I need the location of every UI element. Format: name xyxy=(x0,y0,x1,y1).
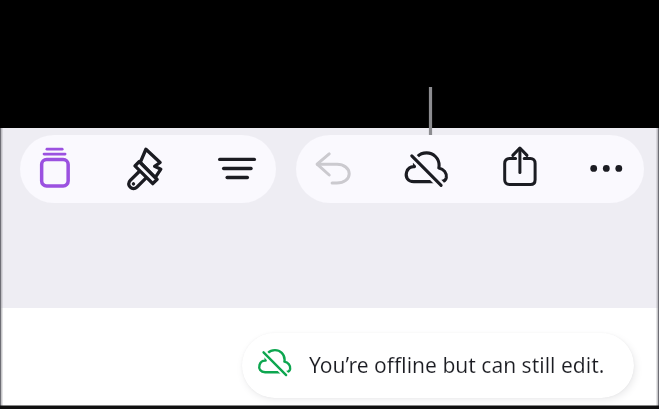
button[interactable]: Format xyxy=(120,135,168,203)
button[interactable]: Undo xyxy=(308,135,356,203)
button[interactable]: Offline xyxy=(402,135,450,203)
staticText: You’re offline but can still edit. xyxy=(309,351,605,380)
button[interactable]: Share xyxy=(496,135,544,203)
button[interactable]: Align xyxy=(214,135,262,203)
button[interactable]: You’re offline but can still edit. xyxy=(242,333,634,398)
button[interactable]: More options xyxy=(583,135,631,203)
button[interactable]: Insert text box xyxy=(31,135,79,203)
